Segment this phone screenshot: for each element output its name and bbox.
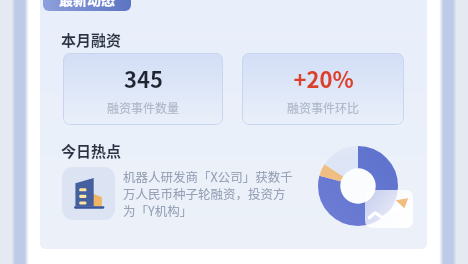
staticText: 本月融资 <box>61 29 122 51</box>
staticText: 最新动态 <box>59 0 115 9</box>
staticText: 345 <box>124 62 163 94</box>
button[interactable]: 最新动态 <box>43 0 131 11</box>
button[interactable]: +20% <box>242 53 404 125</box>
staticText: 机器人研发商「X公司」获数千万人民币种子轮融资，投资方为「Y机构」 <box>123 167 294 220</box>
button[interactable]: 345 <box>63 53 223 125</box>
staticText: 今日热点 <box>61 140 122 162</box>
staticText: 融资事件环比 <box>287 99 360 116</box>
staticText: 融资事件数量 <box>107 99 180 116</box>
staticText: +20% <box>293 62 354 94</box>
